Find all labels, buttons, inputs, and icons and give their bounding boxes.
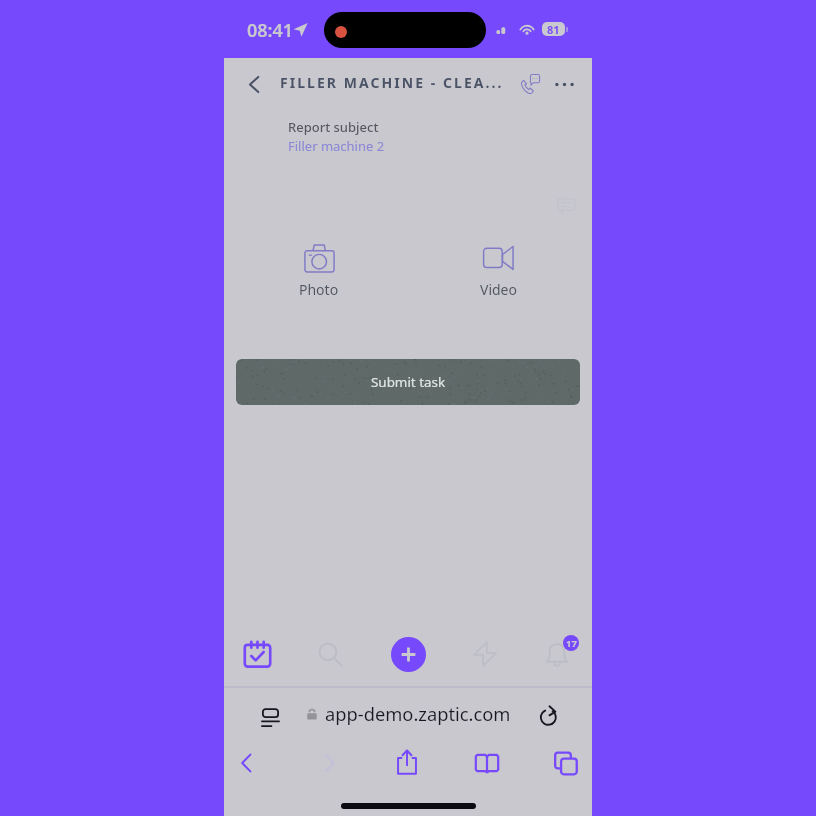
staticText: 81 (547, 22, 560, 36)
button[interactable]: Tabs (544, 741, 588, 785)
button[interactable]: Tasks (236, 633, 278, 675)
staticText: 17 (566, 637, 577, 650)
button[interactable]: Page settings (253, 697, 285, 729)
button[interactable]: Bookmarks (465, 741, 509, 785)
staticText: app-demo.zaptic.com (325, 701, 511, 726)
button[interactable]: Add (391, 637, 426, 672)
staticText: 08:41 (247, 18, 294, 43)
staticText: Photo (299, 280, 339, 299)
button[interactable]: Call (513, 67, 547, 101)
staticText: Video (480, 280, 517, 299)
staticText: Filler machine 2 (288, 137, 385, 155)
button[interactable]: Share (385, 740, 429, 784)
button[interactable]: Video (464, 244, 532, 299)
staticText: FILLER MACHINE - CLEA... (280, 73, 504, 92)
button[interactable]: Photo (285, 244, 353, 299)
button[interactable]: More options (547, 67, 581, 101)
button[interactable]: Submit task (236, 359, 580, 405)
staticText: Submit task (371, 373, 446, 391)
staticText: Report subject (288, 118, 379, 136)
button[interactable]: Back (236, 66, 272, 102)
button[interactable]: Notifications (537, 634, 577, 674)
button[interactable]: Reload (533, 697, 565, 729)
button[interactable]: Back (225, 741, 269, 785)
